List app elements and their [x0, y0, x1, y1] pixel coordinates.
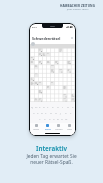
staticText: L	[70, 111, 72, 114]
staticText: A	[33, 111, 35, 114]
staticText: Heute	[33, 128, 39, 131]
button[interactable]: O	[65, 104, 70, 108]
button[interactable]: R	[42, 104, 46, 108]
staticText: 9:41	[32, 25, 37, 28]
button[interactable]: Z	[50, 104, 55, 108]
button[interactable]: Info	[31, 42, 35, 46]
staticText: N	[61, 117, 63, 120]
staticText: G	[50, 111, 52, 114]
button[interactable]: M	[64, 116, 68, 120]
staticText: V	[53, 117, 55, 120]
button[interactable]: C	[47, 116, 52, 120]
button[interactable]: W	[34, 104, 38, 108]
staticText: U	[57, 105, 59, 108]
staticText: M	[65, 117, 68, 120]
button[interactable]: D	[40, 110, 44, 114]
staticText: R	[43, 105, 45, 108]
staticText: HAMBACHER ZEITUNG	[60, 4, 95, 8]
button[interactable]: Mehr	[64, 123, 75, 131]
button[interactable]: S	[36, 110, 40, 114]
button[interactable]: F	[44, 110, 48, 114]
staticText: Y	[39, 117, 41, 120]
staticText: Q	[31, 105, 33, 108]
button[interactable]: Rätsel	[42, 123, 53, 131]
staticText: E	[39, 105, 41, 108]
button[interactable]: L	[68, 110, 73, 114]
button[interactable]: E	[38, 104, 42, 108]
staticText: H	[55, 111, 57, 114]
button[interactable]: K	[63, 110, 68, 114]
staticText: F	[45, 111, 47, 114]
button[interactable]: A	[32, 110, 36, 114]
button[interactable]: Heute	[30, 123, 42, 131]
button[interactable]: X	[42, 116, 47, 120]
staticText: O	[67, 105, 69, 108]
staticText: Jeden Tag erwartet Sie neuer Rätsel-Spaß…	[26, 153, 77, 165]
staticText: Z	[52, 105, 54, 108]
staticText: JETZT DIGITAL LESEN	[67, 8, 89, 11]
button[interactable]: T	[46, 104, 50, 108]
staticText: Merken	[55, 128, 63, 131]
staticText: C	[49, 117, 51, 120]
staticText: J	[60, 111, 61, 114]
button[interactable]: H	[53, 110, 58, 114]
staticText: B	[57, 117, 59, 120]
staticText: I	[62, 105, 63, 108]
staticText: Schwedenrätsel	[32, 36, 61, 41]
button[interactable]: G	[48, 110, 53, 114]
staticText: X	[44, 117, 46, 120]
staticText: Interaktiv	[36, 144, 68, 152]
button[interactable]: Y	[37, 116, 42, 120]
button[interactable]: B	[56, 116, 60, 120]
button[interactable]: U	[55, 104, 60, 108]
staticText: D	[41, 111, 43, 114]
button[interactable]: P	[70, 104, 75, 108]
button[interactable]: Q	[30, 104, 34, 108]
button[interactable]: N	[60, 116, 64, 120]
staticText: K	[65, 111, 67, 114]
button[interactable]: J	[58, 110, 63, 114]
staticText: T	[47, 105, 49, 108]
staticText: W	[35, 105, 38, 108]
button[interactable]: Merken	[53, 123, 64, 131]
button[interactable]: I	[60, 104, 65, 108]
staticText: Mehr	[67, 128, 73, 131]
button[interactable]: V	[52, 116, 56, 120]
staticText: Rätsel	[45, 128, 51, 131]
staticText: S	[37, 111, 39, 114]
staticText: P	[72, 105, 74, 108]
